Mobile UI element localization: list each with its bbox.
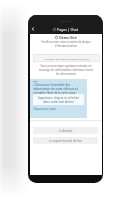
staticText: Important : cliquez ici et le lien dans … bbox=[35, 96, 82, 104]
staticText: Cliquez pour savoir bbox=[33, 107, 57, 111]
button[interactable]: Il se peut que votre compte soit activé bbox=[33, 54, 100, 62]
staticText: Lequel est suivi de lien bbox=[52, 139, 82, 143]
staticText: « Découvrez l'ensemble des informations … bbox=[33, 83, 84, 95]
staticText: Il se peut que votre compte soit activé bbox=[44, 57, 89, 60]
staticText: Vous recevrez dans quelques instants un … bbox=[38, 64, 94, 76]
staticText: Annuler bbox=[62, 129, 73, 133]
button[interactable]: Annuler bbox=[33, 127, 98, 134]
button[interactable]: Back bbox=[28, 24, 37, 34]
staticText: Pages | Chat bbox=[57, 27, 78, 32]
button[interactable]: Lequel est suivi de lien bbox=[33, 137, 98, 144]
staticText: Demo Site bbox=[59, 35, 77, 40]
staticText: Veuillez entrer votre numéro de plaque d… bbox=[39, 40, 93, 48]
staticText: Info bbox=[33, 80, 38, 83]
button[interactable]: Back bbox=[28, 24, 103, 34]
